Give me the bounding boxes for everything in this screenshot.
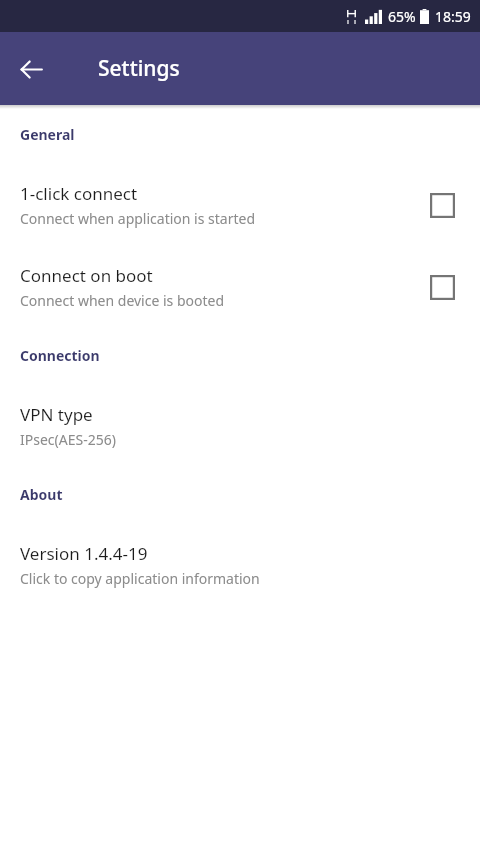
button[interactable]: 1-click connect <box>424 187 460 223</box>
staticText: General <box>20 125 75 144</box>
staticText: IPsec(AES-256) <box>20 430 116 449</box>
button[interactable]: 1-click connect <box>0 182 480 228</box>
staticText: VPN type <box>20 403 93 426</box>
staticText: About <box>20 485 63 504</box>
button[interactable]: Back <box>9 47 53 91</box>
button[interactable]: VPN type <box>0 403 480 449</box>
button[interactable]: Connect on boot <box>0 264 480 310</box>
staticText: Settings <box>98 54 180 83</box>
button[interactable]: Version 1.4.4-19 <box>0 542 480 588</box>
staticText: 65% <box>388 7 416 26</box>
staticText: 1-click connect <box>20 182 138 205</box>
staticText: Connect on boot <box>20 264 153 287</box>
button[interactable]: Connect on boot <box>424 269 460 305</box>
staticText: Click to copy application information <box>20 569 260 588</box>
staticText: Version 1.4.4-19 <box>20 542 148 565</box>
staticText: Connect when application is started <box>20 209 255 228</box>
staticText: 18:59 <box>435 7 471 26</box>
staticText: Connect when device is booted <box>20 291 225 310</box>
staticText: Connection <box>20 346 100 365</box>
